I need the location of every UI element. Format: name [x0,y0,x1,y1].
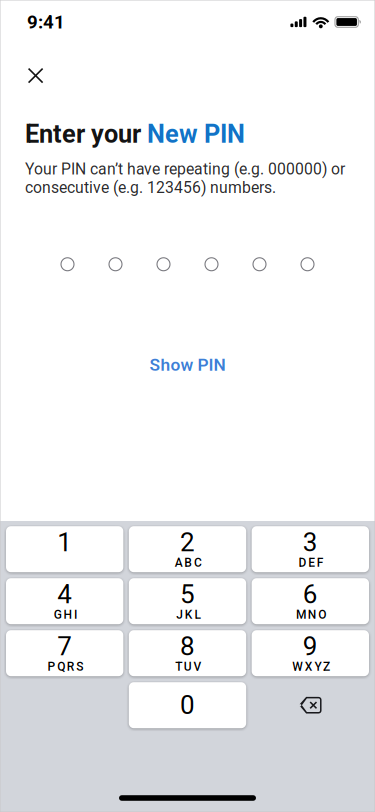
staticText: JKL [176,608,200,622]
button[interactable]: 8 [129,630,246,676]
button[interactable]: 2 [129,526,246,572]
staticText: 9 [303,631,318,662]
staticText: 5 [180,579,195,610]
button[interactable]: 6 [252,578,369,624]
button[interactable]: Delete [252,682,369,728]
staticText: 0 [180,690,195,720]
staticText: ABC [175,556,202,570]
staticText: 7 [57,631,72,662]
button[interactable]: 9 [252,630,369,676]
button[interactable]: 1 [6,526,123,572]
button[interactable]: Show PIN [0,348,375,382]
staticText: GHI [54,608,77,622]
staticText: 3 [303,527,318,558]
button[interactable]: 7 [6,630,123,676]
button[interactable]: 0 [129,682,246,728]
staticText: 8 [180,631,195,662]
staticText: New PIN [147,119,245,149]
button[interactable]: 3 [252,526,369,572]
staticText: 1 [57,527,72,558]
button[interactable]: Close [0,44,55,95]
staticText: WXYZ [292,660,330,674]
staticText: Enter your [25,119,147,149]
button[interactable]: 5 [129,578,246,624]
staticText: 4 [57,579,72,610]
staticText: Show PIN [149,355,225,375]
staticText: DEF [298,556,324,570]
staticText: Your PIN can’t have repeating (e.g. 0000… [25,160,345,197]
staticText: 9:41 [27,11,65,33]
staticText: PQRS [48,660,83,674]
staticText: TUV [175,660,201,674]
staticText: MNO [296,608,326,622]
staticText: 6 [303,579,318,610]
button[interactable]: 4 [6,578,123,624]
staticText: 2 [180,527,195,558]
